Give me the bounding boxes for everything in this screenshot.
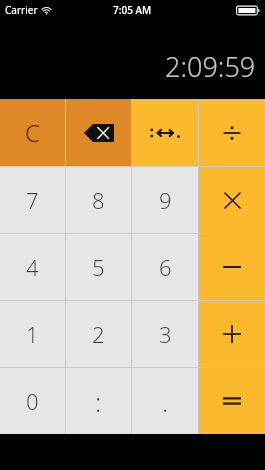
button[interactable]: Equals <box>199 368 265 434</box>
staticText: 6 <box>159 252 172 282</box>
staticText: 4 <box>26 252 39 282</box>
button[interactable]: . <box>132 368 198 434</box>
button[interactable]: 5 <box>66 234 131 300</box>
button[interactable]: 7 <box>0 167 65 233</box>
button[interactable]: 9 <box>132 167 198 233</box>
staticText: 3 <box>159 319 172 349</box>
button[interactable]: Backspace <box>66 99 131 166</box>
button[interactable]: 1 <box>0 301 65 367</box>
staticText: . <box>162 384 169 419</box>
button[interactable]: 6 <box>132 234 198 300</box>
staticText: 0 <box>26 386 39 416</box>
button[interactable]: 2 <box>66 301 131 367</box>
staticText: 5 <box>92 252 105 282</box>
button[interactable]: : <box>66 368 131 434</box>
staticText: 2 <box>92 319 105 349</box>
button[interactable]: Subtract <box>199 234 265 300</box>
staticText: Carrier <box>5 3 38 17</box>
staticText: 8 <box>92 185 105 215</box>
staticText: 1 <box>26 319 39 349</box>
staticText: 7:05 AM <box>113 3 152 17</box>
staticText: C <box>25 116 40 149</box>
button[interactable]: Add <box>199 301 265 367</box>
button[interactable]: 8 <box>66 167 131 233</box>
staticText: 9 <box>159 185 172 215</box>
button[interactable]: Multiply <box>199 167 265 233</box>
button[interactable]: Toggle time decimal <box>132 99 198 166</box>
button[interactable]: 3 <box>132 301 198 367</box>
button[interactable]: Clear <box>0 99 65 166</box>
staticText: : <box>95 384 102 419</box>
staticText: 2:09:59 <box>165 48 256 85</box>
button[interactable]: Divide <box>199 99 265 166</box>
button[interactable]: 0 <box>0 368 65 434</box>
button[interactable]: 4 <box>0 234 65 300</box>
staticText: 7 <box>26 185 39 215</box>
